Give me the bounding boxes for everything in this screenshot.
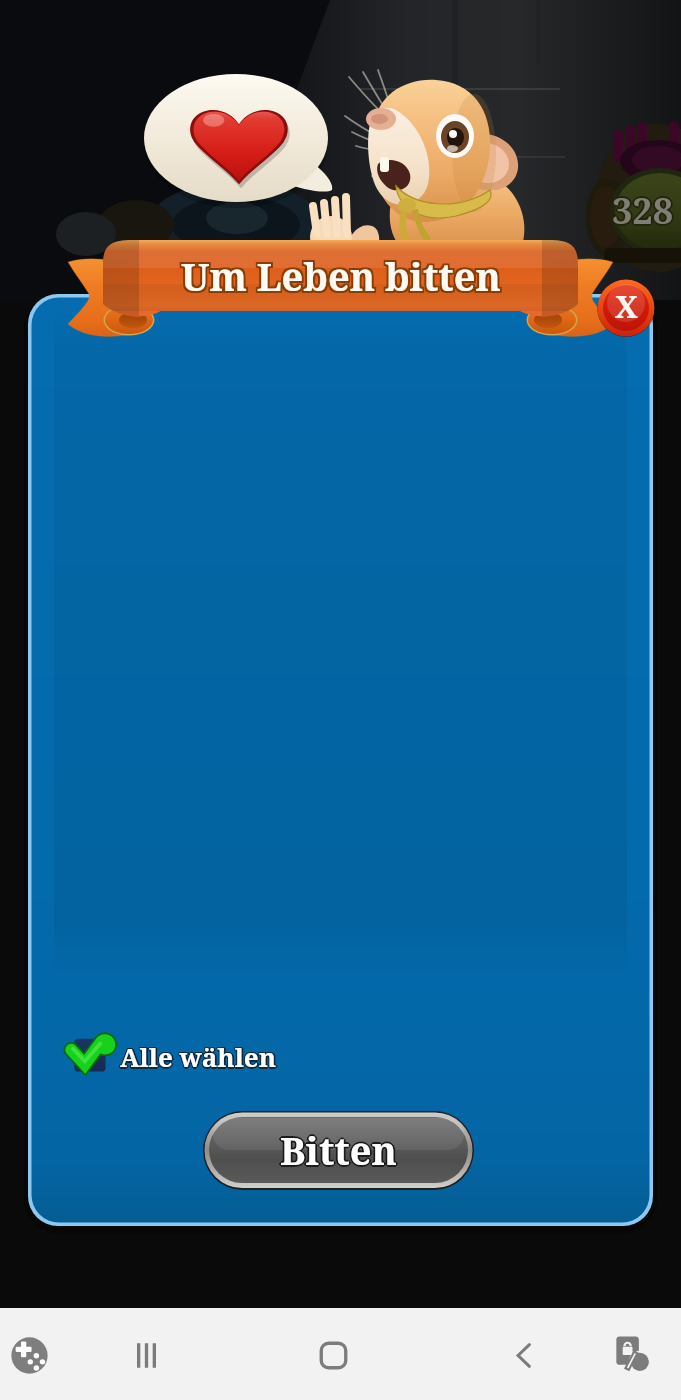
staticText: Alle wählen xyxy=(121,1040,278,1075)
staticText: 328 xyxy=(612,186,674,235)
staticText: Um Leben bitten xyxy=(179,248,499,300)
staticText: Alle wählen xyxy=(120,1041,277,1076)
staticText: Bitten xyxy=(280,1124,397,1176)
staticText: Um Leben bitten xyxy=(183,250,503,302)
staticText: X xyxy=(615,285,638,327)
staticText: Alle wählen xyxy=(119,1038,276,1073)
staticText: 328 xyxy=(613,187,675,236)
button[interactable]: Bitten xyxy=(203,1110,474,1190)
staticText: Bitten xyxy=(279,1123,396,1175)
staticText: Bitten xyxy=(280,1126,397,1178)
staticText: 328 xyxy=(613,185,675,234)
staticText: 328 xyxy=(612,188,674,237)
button[interactable]: Screenshot xyxy=(608,1331,657,1380)
staticText: Alle wählen xyxy=(121,1038,278,1073)
staticText: 328 xyxy=(611,187,673,236)
staticText: Bitten xyxy=(281,1125,398,1177)
button[interactable]: Recent apps xyxy=(122,1331,171,1380)
button[interactable]: Home xyxy=(309,1331,358,1380)
staticText: Um Leben bitten xyxy=(179,250,499,302)
button[interactable]: Alle wählen xyxy=(64,1030,277,1082)
button[interactable]: Game tools xyxy=(5,1331,54,1380)
staticText: 328 xyxy=(611,185,673,234)
staticText: 328 xyxy=(612,184,674,233)
staticText: Um Leben bitten xyxy=(183,248,503,300)
staticText: 328 xyxy=(610,186,672,235)
staticText: Alle wählen xyxy=(120,1038,277,1073)
button[interactable]: Um Leben bitten xyxy=(0,228,681,348)
staticText: Alle wählen xyxy=(119,1040,276,1075)
staticText: Bitten xyxy=(279,1125,396,1177)
staticText: Alle wählen xyxy=(122,1039,279,1074)
button[interactable]: Back xyxy=(500,1331,549,1380)
staticText: Bitten xyxy=(282,1124,399,1176)
staticText: Bitten xyxy=(281,1123,398,1175)
staticText: Bitten xyxy=(280,1122,397,1174)
staticText: 328 xyxy=(614,186,676,235)
staticText: Um Leben bitten xyxy=(179,252,499,304)
staticText: Um Leben bitten xyxy=(183,252,503,304)
staticText: Bitten xyxy=(278,1124,395,1176)
staticText: Um Leben bitten xyxy=(181,250,501,302)
staticText: Um Leben bitten xyxy=(181,248,501,300)
staticText: Um Leben bitten xyxy=(181,252,501,304)
button[interactable]: Close xyxy=(597,279,655,337)
staticText: Alle wählen xyxy=(120,1039,277,1074)
staticText: Alle wählen xyxy=(119,1039,276,1074)
